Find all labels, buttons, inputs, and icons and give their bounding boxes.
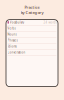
staticText: Vocabulary — [10, 21, 24, 24]
button[interactable]: Nouns — [6, 32, 58, 38]
staticText: Phrases — [8, 39, 18, 42]
button[interactable]: Phrases — [6, 38, 58, 44]
button[interactable]: Vocabulary — [6, 20, 58, 26]
button[interactable]: Verbs — [6, 26, 58, 32]
staticText: 24 words — [43, 21, 56, 24]
staticText: Idioms — [8, 45, 17, 48]
staticText: by Category — [20, 10, 43, 15]
staticText: Practice — [24, 4, 39, 10]
staticText: Conversation — [8, 51, 26, 54]
staticText: Verbs — [8, 27, 16, 30]
button[interactable]: Conversation — [6, 50, 58, 56]
button[interactable]: Idioms — [6, 44, 58, 50]
staticText: Nouns — [8, 33, 17, 36]
